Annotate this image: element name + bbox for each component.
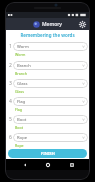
button[interactable]: Rope xyxy=(13,133,88,142)
staticText: Flag xyxy=(15,107,23,112)
staticText: Worm xyxy=(17,44,29,50)
staticText: Memory xyxy=(42,21,63,28)
staticText: Boot xyxy=(17,117,27,123)
staticText: Rope xyxy=(17,135,28,141)
staticText: FINISH xyxy=(41,151,55,156)
button[interactable]: Back xyxy=(20,160,29,169)
staticText: 5 xyxy=(9,116,12,123)
button[interactable]: Settings xyxy=(77,19,87,29)
staticText: Branch xyxy=(17,63,31,69)
staticText: 3 xyxy=(9,80,12,87)
staticText: 2 xyxy=(9,62,12,69)
staticText: Glass xyxy=(17,81,28,87)
button[interactable]: Branch xyxy=(13,61,88,70)
button[interactable]: Boot xyxy=(13,115,88,124)
staticText: 6 xyxy=(9,134,12,141)
staticText: Glass xyxy=(15,89,25,94)
button[interactable]: Worm xyxy=(13,42,88,51)
staticText: Worm xyxy=(15,52,26,57)
staticText: Boot xyxy=(15,125,23,130)
staticText: Rope xyxy=(15,143,24,148)
staticText: Branch xyxy=(15,71,27,76)
button[interactable]: Home xyxy=(43,160,52,169)
button[interactable]: Glass xyxy=(13,79,88,88)
staticText: 4 xyxy=(9,98,12,105)
button[interactable]: Flag xyxy=(13,97,88,106)
staticText: Remembering the words xyxy=(5,32,90,38)
staticText: 1 xyxy=(9,43,12,50)
button[interactable]: FINISH xyxy=(8,149,87,158)
button[interactable]: Recent apps xyxy=(67,160,76,169)
staticText: Flag xyxy=(17,99,26,105)
